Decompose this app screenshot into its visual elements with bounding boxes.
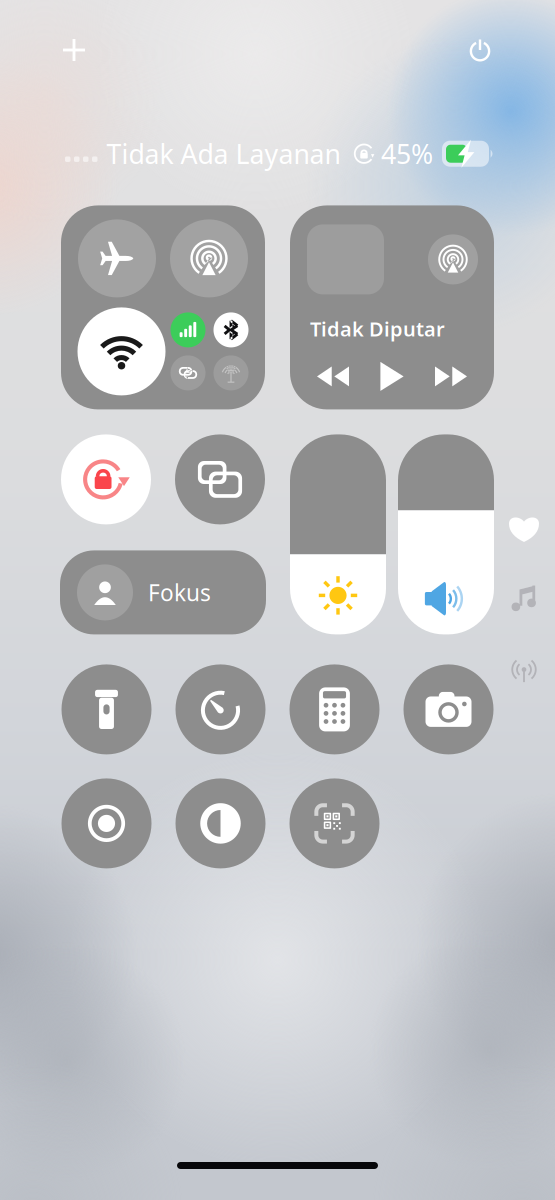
staticText: 45% <box>381 136 433 171</box>
staticText: Fokus <box>148 577 211 607</box>
button[interactable]: Now Playing <box>504 579 544 619</box>
button[interactable]: Add Control <box>55 31 93 69</box>
button[interactable]: Bluetooth <box>213 312 248 347</box>
button[interactable]: Timer <box>175 664 265 754</box>
button[interactable]: Personal Hotspot <box>170 355 205 390</box>
button[interactable]: Connectivity <box>504 649 544 689</box>
button[interactable]: Cellular Data <box>170 312 205 347</box>
button[interactable]: Airplane Mode <box>78 219 156 297</box>
button[interactable]: AirDrop <box>170 219 248 297</box>
button[interactable]: Rewind <box>311 358 355 394</box>
staticText: Tidak Diputar <box>310 315 445 342</box>
button[interactable]: Play <box>370 358 414 394</box>
button[interactable]: Screen Recording <box>61 778 151 868</box>
button[interactable]: Fokus <box>60 550 266 634</box>
button[interactable]: Satellite <box>213 355 248 390</box>
button[interactable]: Wi-Fi <box>77 307 165 395</box>
button[interactable]: Home Controls <box>504 509 544 549</box>
button[interactable]: Rotation Lock <box>61 434 151 524</box>
button[interactable]: Calculator <box>289 664 379 754</box>
staticText: Tidak Ada Layanan <box>106 136 340 171</box>
button[interactable]: Power <box>460 30 500 70</box>
button[interactable]: Brightness <box>290 434 386 634</box>
button[interactable]: AirPlay <box>428 234 478 284</box>
button[interactable]: Dark Mode <box>175 778 265 868</box>
button[interactable]: Code Scanner <box>289 778 379 868</box>
button[interactable]: Volume <box>398 434 494 634</box>
button[interactable]: Camera <box>403 664 493 754</box>
button[interactable]: Flashlight <box>61 664 151 754</box>
button[interactable]: Fast Forward <box>429 358 473 394</box>
button[interactable]: Screen Mirroring <box>175 434 265 524</box>
